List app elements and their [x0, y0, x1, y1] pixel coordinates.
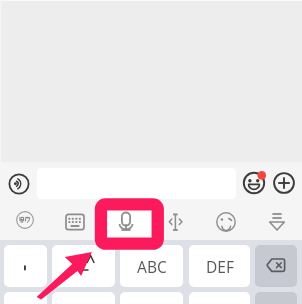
button[interactable] [37, 168, 236, 199]
button[interactable]: Move cursor [153, 202, 199, 242]
button[interactable] [4, 292, 47, 304]
button[interactable] [52, 292, 115, 304]
button[interactable]: Add [269, 168, 299, 198]
button[interactable]: DEF [189, 245, 250, 287]
button[interactable]: Keyboard layout [52, 202, 98, 242]
button[interactable]: Delete [255, 245, 297, 287]
button[interactable]: Input method [2, 200, 48, 240]
staticText: DEF [206, 256, 234, 277]
button[interactable]: Voice input [103, 202, 149, 242]
staticText: ABC [137, 256, 167, 277]
button[interactable] [120, 292, 183, 304]
button[interactable]: Emoji [203, 202, 249, 242]
button[interactable] [52, 245, 115, 287]
button[interactable] [4, 245, 47, 287]
button[interactable]: Voice input [3, 168, 34, 199]
button[interactable]: Delete [255, 292, 297, 304]
button[interactable]: Emoji [239, 168, 269, 198]
button[interactable]: Hide keyboard [254, 201, 300, 241]
button[interactable]: ABC [120, 245, 183, 287]
button[interactable] [189, 292, 250, 304]
